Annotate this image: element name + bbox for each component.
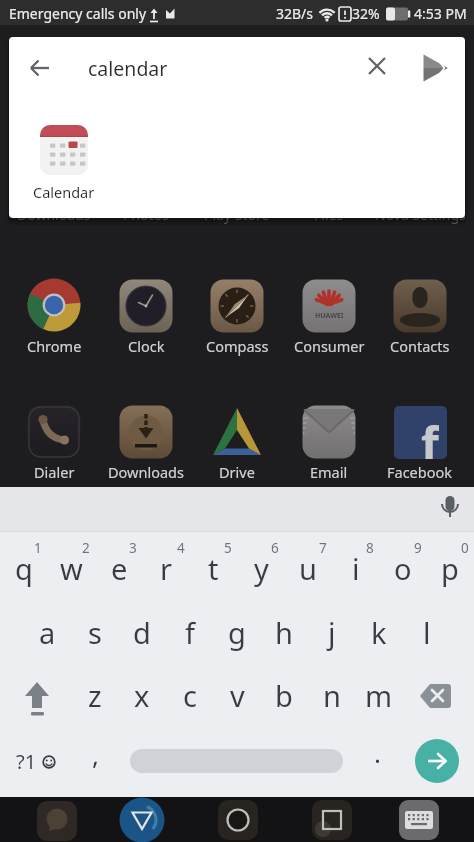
staticText: 2 <box>82 539 90 557</box>
button[interactable]: c <box>166 671 214 719</box>
button[interactable]: h <box>260 608 308 656</box>
button[interactable]: , <box>80 734 110 774</box>
button[interactable]: w <box>47 544 95 592</box>
staticText: z <box>88 676 102 715</box>
button[interactable] <box>118 796 166 842</box>
button[interactable]: q <box>0 544 48 592</box>
staticText: b <box>275 676 293 715</box>
staticText: j <box>328 613 336 652</box>
staticText: Clock <box>128 336 165 356</box>
button[interactable] <box>398 799 440 841</box>
button[interactable] <box>361 50 393 82</box>
staticText: Play Store <box>204 205 270 224</box>
staticText: ?1 <box>16 748 37 775</box>
staticText: Drive <box>219 462 255 482</box>
staticText: f <box>185 613 195 652</box>
button[interactable]: x <box>118 671 166 719</box>
button[interactable]: d <box>118 608 166 656</box>
staticText: g <box>228 613 246 652</box>
button[interactable] <box>40 125 88 175</box>
button[interactable]: r <box>142 544 190 592</box>
staticText: calendar <box>88 55 168 82</box>
staticText: s <box>88 613 102 652</box>
button[interactable]: m <box>355 671 403 719</box>
button[interactable] <box>388 400 452 464</box>
staticText: 4:53 PM <box>414 4 467 23</box>
button[interactable] <box>114 274 178 338</box>
button[interactable] <box>205 400 269 464</box>
button[interactable]: k <box>355 608 403 656</box>
button[interactable]: e <box>95 544 143 592</box>
staticText: 0 <box>461 539 469 557</box>
staticText: HUAWEI <box>315 311 344 321</box>
button[interactable]: i <box>332 544 380 592</box>
staticText: 6 <box>271 539 279 557</box>
button[interactable]: y <box>237 544 285 592</box>
staticText: , <box>92 737 99 772</box>
button[interactable]: j <box>308 608 356 656</box>
staticText: h <box>275 613 293 652</box>
staticText: Downloads <box>17 205 91 224</box>
button[interactable] <box>308 796 356 842</box>
button[interactable]: z <box>71 671 119 719</box>
staticText: x <box>134 676 150 715</box>
button[interactable] <box>412 672 460 720</box>
button[interactable]: b <box>260 671 308 719</box>
button[interactable]: . <box>362 732 392 772</box>
button[interactable] <box>297 400 361 464</box>
staticText: k <box>371 613 387 652</box>
button[interactable] <box>297 274 361 338</box>
button[interactable] <box>418 50 454 86</box>
button[interactable] <box>22 400 86 464</box>
staticText: . <box>374 735 381 770</box>
staticText: n <box>323 676 341 715</box>
staticText: Photos <box>123 205 169 224</box>
button[interactable] <box>130 749 343 773</box>
button[interactable]: s <box>71 608 119 656</box>
button[interactable]: g <box>213 608 261 656</box>
button[interactable]: v <box>213 671 261 719</box>
staticText: Calendar <box>33 182 95 202</box>
staticText: Chrome <box>27 336 82 356</box>
staticText: w <box>60 549 83 588</box>
staticText: i <box>352 549 360 588</box>
button[interactable] <box>214 796 262 842</box>
staticText: 8 <box>366 539 374 557</box>
button[interactable]: u <box>284 544 332 592</box>
staticText: 7 <box>319 539 327 557</box>
button[interactable]: t <box>189 544 237 592</box>
staticText: r <box>160 549 172 588</box>
staticText: Emergency calls only <box>9 4 147 23</box>
button[interactable] <box>114 400 178 464</box>
button[interactable] <box>24 52 56 84</box>
button[interactable]: p <box>426 544 474 592</box>
staticText: a <box>39 613 56 652</box>
button[interactable]: f <box>166 608 214 656</box>
staticText: Contacts <box>390 336 450 356</box>
button[interactable]: ?1 <box>6 741 46 781</box>
staticText: Nova Settings <box>375 205 466 224</box>
staticText: d <box>133 613 151 652</box>
staticText: m <box>365 676 393 715</box>
staticText: Email <box>310 462 348 482</box>
staticText: o <box>394 549 412 588</box>
staticText: 3 <box>129 539 137 557</box>
button[interactable] <box>415 739 459 783</box>
staticText: e <box>111 549 128 588</box>
staticText: Consumer <box>294 336 365 356</box>
button[interactable] <box>13 671 61 719</box>
staticText: Downloads <box>108 462 184 482</box>
button[interactable]: o <box>379 544 427 592</box>
staticText: t <box>208 549 219 588</box>
staticText: 5 <box>224 539 232 557</box>
staticText: l <box>423 613 431 652</box>
button[interactable] <box>388 274 452 338</box>
button[interactable] <box>22 274 86 338</box>
button[interactable]: Calendar <box>9 172 119 212</box>
button[interactable]: f <box>394 406 447 459</box>
button[interactable] <box>205 274 269 338</box>
button[interactable] <box>425 490 474 530</box>
button[interactable]: a <box>23 608 71 656</box>
button[interactable]: n <box>308 671 356 719</box>
button[interactable]: l <box>403 608 451 656</box>
